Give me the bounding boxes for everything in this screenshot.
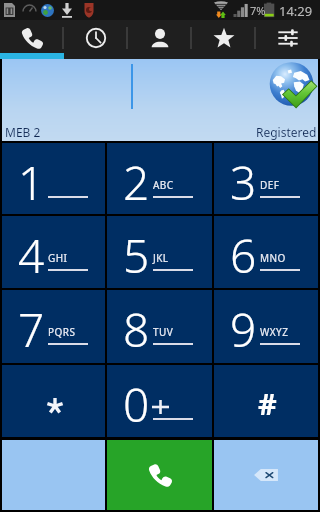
button[interactable]: Backspace bbox=[214, 440, 318, 510]
staticText: 1 bbox=[18, 151, 45, 214]
staticText: 3 bbox=[230, 151, 257, 214]
staticText: 6 bbox=[230, 224, 257, 287]
staticText: MEB 2 bbox=[5, 124, 41, 140]
staticText: 7% bbox=[250, 3, 266, 18]
button[interactable]: 8 bbox=[107, 290, 212, 363]
button[interactable]: 4 bbox=[2, 216, 105, 288]
staticText: ABC bbox=[153, 178, 174, 192]
button[interactable]: 2 bbox=[107, 143, 212, 214]
staticText: JKL bbox=[153, 251, 169, 265]
staticText: 4 bbox=[18, 224, 45, 287]
button[interactable]: 7 bbox=[2, 290, 105, 363]
staticText: 7 bbox=[18, 298, 45, 361]
staticText: MNO bbox=[260, 251, 286, 265]
staticText: 0 bbox=[123, 373, 150, 436]
button[interactable]: 3 bbox=[214, 143, 318, 214]
button[interactable]: Keypad bbox=[0, 20, 64, 56]
button[interactable]: Contacts bbox=[128, 20, 192, 56]
button[interactable]: 6 bbox=[214, 216, 318, 288]
staticText: TUV bbox=[153, 325, 174, 339]
button[interactable]: 9 bbox=[214, 290, 318, 363]
button[interactable]: Call bbox=[107, 440, 212, 510]
button[interactable]: 5 bbox=[107, 216, 212, 288]
staticText: 9 bbox=[230, 298, 257, 361]
staticText: 8 bbox=[123, 298, 150, 361]
button[interactable]: # bbox=[214, 365, 318, 437]
staticText: PQRS bbox=[48, 325, 76, 339]
staticText: Registered bbox=[256, 124, 317, 140]
button[interactable]: 0 bbox=[107, 365, 212, 437]
staticText: WXYZ bbox=[260, 325, 289, 339]
staticText: # bbox=[258, 384, 277, 423]
staticText: 5 bbox=[123, 224, 150, 287]
button[interactable]: Settings bbox=[256, 20, 320, 56]
button[interactable]: Recents bbox=[64, 20, 128, 56]
button[interactable]: * bbox=[2, 365, 105, 437]
staticText: DEF bbox=[260, 178, 280, 192]
staticText: 2 bbox=[123, 151, 150, 214]
staticText: 14:29 bbox=[279, 2, 313, 20]
button[interactable]: 1 bbox=[2, 143, 105, 214]
staticText: GHI bbox=[48, 251, 68, 265]
button[interactable]: Favorites bbox=[192, 20, 256, 56]
